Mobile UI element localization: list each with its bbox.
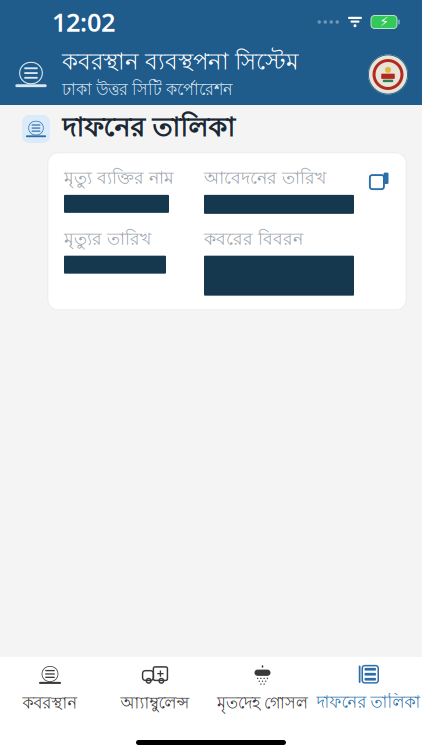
staticText: দাফনের তালিকা [316,692,420,714]
staticText: মৃত্যু ব্যক্তির নাম [64,167,174,191]
button[interactable]: আ্যাম্বুলেন্স [100,657,210,719]
button[interactable]: Edit record [366,167,392,193]
button[interactable]: দাফনের তালিকা [315,657,422,719]
staticText: কবরস্থান [22,693,77,715]
staticText: আ্যাম্বুলেন্স [120,693,189,715]
staticText: ⚡︎ [379,14,388,29]
staticText: মৃতদেহ গোসল [217,693,308,715]
staticText: কবরস্থান ব্যবস্থপনা সিস্টেম [62,47,299,79]
staticText: দাফনের তালিকা [62,111,235,147]
staticText: ঢাকা উত্তর সিটি কর্পোরেশন [62,80,233,102]
staticText: মৃত্যুর তারিখ [64,228,151,252]
staticText: আবেদনের তারিখ [204,167,326,191]
staticText: কবরের বিবরন [204,228,303,252]
staticText: 12:02 [52,5,115,39]
button[interactable]: মৃতদেহ গোসল [210,657,315,719]
button[interactable]: কবরস্থান [0,657,100,719]
